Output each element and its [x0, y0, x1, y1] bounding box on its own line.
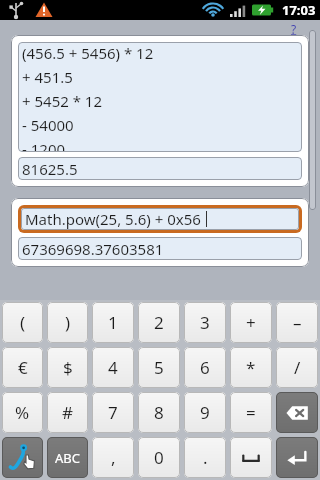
button[interactable]: 81625.5 [22, 157, 302, 180]
button[interactable]: ( [2, 302, 43, 343]
button[interactable]: * [230, 347, 272, 388]
staticText: 2 [154, 311, 164, 334]
button[interactable]: 5 [138, 347, 180, 388]
button[interactable]: 9 [184, 392, 226, 433]
staticText: ( [20, 311, 26, 334]
staticText: 17:03 [282, 1, 316, 19]
staticText: $ [63, 356, 73, 379]
button[interactable]: $ [47, 347, 88, 388]
staticText: ) [65, 311, 71, 334]
staticText: , [111, 446, 116, 469]
staticText: % [15, 401, 30, 424]
button[interactable]: . [184, 437, 226, 478]
button[interactable]: 6 [184, 347, 226, 388]
staticText: . [203, 446, 208, 469]
staticText: # [62, 401, 73, 424]
button[interactable]: (456.5 + 5456) * 12 [11, 35, 309, 187]
button[interactable]: + [230, 302, 272, 343]
staticText: / [294, 356, 301, 379]
button[interactable]: 1 [92, 302, 134, 343]
staticText: + 5452 * 12 [22, 91, 103, 111]
staticText: 67369698.37603581 [22, 239, 164, 259]
staticText: + [246, 311, 256, 334]
staticText: Math.pow(25, 5.6) + 0x56 [25, 209, 201, 229]
staticText: (456.5 + 5456) * 12 [22, 43, 154, 63]
button[interactable]: % [2, 392, 43, 433]
staticText: 1 [108, 311, 118, 334]
button[interactable]: € [2, 347, 43, 388]
staticText: ? [291, 21, 297, 37]
button[interactable]: (456.5 + 5456) * 12 [22, 43, 302, 152]
button[interactable]: 0 [138, 437, 180, 478]
button[interactable]: , [92, 437, 134, 478]
staticText: 0 [154, 446, 164, 469]
staticText: 9 [200, 401, 210, 424]
button[interactable]: 67369698.37603581 [22, 237, 302, 260]
staticText: 7 [108, 401, 118, 424]
button[interactable]: ABC [47, 437, 88, 478]
button[interactable]: 7 [92, 392, 134, 433]
button[interactable]: 3 [184, 302, 226, 343]
staticText: 5 [154, 356, 164, 379]
button[interactable]: Delete [276, 392, 318, 433]
button[interactable]: ) [47, 302, 88, 343]
button[interactable]: Space [230, 437, 272, 478]
staticText: = [246, 401, 256, 424]
staticText: * [246, 356, 256, 379]
staticText: 6 [200, 356, 210, 379]
button[interactable]: Math.pow(25, 5.6) + 0x56 [11, 198, 309, 267]
button[interactable]: / [276, 347, 318, 388]
button[interactable]: Math.pow(25, 5.6) + 0x56 [21, 208, 299, 230]
button[interactable]: = [230, 392, 272, 433]
button[interactable]: # [47, 392, 88, 433]
staticText: – [293, 311, 302, 334]
button[interactable]: 8 [138, 392, 180, 433]
button[interactable]: Enter [276, 437, 318, 478]
staticText: - 54000 [22, 115, 74, 135]
button[interactable]: 2 [138, 302, 180, 343]
button[interactable]: Swype settings [2, 437, 43, 478]
staticText: 4 [108, 356, 118, 379]
staticText: 3 [200, 311, 210, 334]
staticText: - 1200 [22, 139, 66, 152]
staticText: 81625.5 [22, 159, 78, 179]
staticText: 8 [154, 401, 164, 424]
staticText: € [18, 356, 28, 379]
staticText: ABC [55, 449, 80, 467]
button[interactable]: – [276, 302, 318, 343]
staticText: + 451.5 [22, 67, 73, 87]
button[interactable]: 4 [92, 347, 134, 388]
button[interactable]: Help [286, 21, 302, 37]
